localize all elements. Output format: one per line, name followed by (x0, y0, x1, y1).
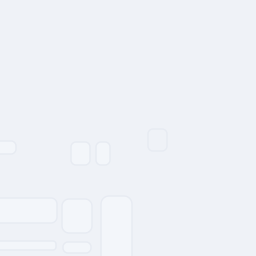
button[interactable]: Caption (0, 241, 56, 250)
button[interactable]: Option one (71, 142, 90, 165)
button[interactable]: Tag (63, 242, 91, 253)
button[interactable]: Secondary card (62, 199, 92, 233)
button[interactable]: Option two (96, 142, 110, 165)
button[interactable]: Item (0, 141, 16, 154)
